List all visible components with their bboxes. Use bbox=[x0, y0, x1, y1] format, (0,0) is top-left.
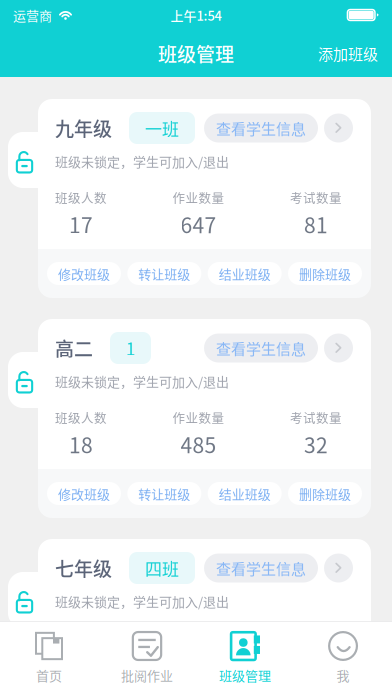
staticText: 查看学生信息 bbox=[216, 117, 306, 139]
staticText: 班级未锁定，学生可加入/退出 bbox=[55, 152, 229, 170]
staticText: 81 bbox=[304, 209, 328, 239]
staticText: 班级未锁定，学生可加入/退出 bbox=[55, 372, 229, 390]
button[interactable]: 添加班级 bbox=[304, 30, 392, 76]
staticText: 考试数量 bbox=[290, 628, 342, 647]
button[interactable]: 转让班级 bbox=[127, 482, 201, 505]
button[interactable]: 修改班级 bbox=[47, 482, 121, 505]
staticText: 一班 bbox=[145, 116, 179, 140]
button[interactable]: 删除班级 bbox=[288, 262, 362, 285]
button[interactable]: 我 bbox=[294, 622, 392, 696]
staticText: 班级未锁定，学生可加入/退出 bbox=[55, 592, 229, 610]
staticText: 转让班级 bbox=[138, 484, 190, 503]
button[interactable]: 查看学生信息 bbox=[204, 553, 353, 582]
staticText: 考试数量 bbox=[290, 188, 342, 207]
staticText: 17 bbox=[69, 209, 93, 239]
staticText: 九年级 bbox=[55, 114, 112, 142]
staticText: 删除班级 bbox=[299, 484, 351, 503]
staticText: 添加班级 bbox=[318, 43, 378, 64]
staticText: 运营商 bbox=[13, 6, 52, 24]
staticText: 485 bbox=[180, 429, 216, 459]
staticText: 转让班级 bbox=[138, 264, 190, 283]
staticText: 结业班级 bbox=[219, 484, 271, 503]
staticText: 班级人数 bbox=[55, 188, 107, 207]
button[interactable]: 结业班级 bbox=[208, 482, 282, 505]
staticText: 考试数量 bbox=[290, 408, 342, 427]
staticText: 七年级 bbox=[55, 554, 112, 582]
button[interactable]: 修改班级 bbox=[47, 262, 121, 285]
button[interactable]: 转让班级 bbox=[127, 262, 201, 285]
staticText: 查看学生信息 bbox=[216, 337, 306, 359]
staticText: 四班 bbox=[145, 556, 179, 580]
staticText: 修改班级 bbox=[58, 264, 110, 283]
staticText: 查看学生信息 bbox=[216, 557, 306, 579]
staticText: 批阅作业 bbox=[121, 666, 173, 684]
staticText: 班级管理 bbox=[219, 666, 271, 684]
button[interactable]: 查看学生信息 bbox=[204, 113, 353, 142]
staticText: 班级人数 bbox=[55, 408, 107, 427]
staticText: 1 bbox=[126, 336, 135, 360]
button[interactable]: 查看学生信息 bbox=[204, 333, 353, 362]
staticText: 高二 bbox=[55, 334, 93, 362]
button[interactable]: 班级管理 bbox=[196, 622, 294, 696]
staticText: 删除班级 bbox=[299, 264, 351, 283]
staticText: 作业数量 bbox=[172, 188, 224, 207]
staticText: 首页 bbox=[36, 666, 62, 684]
staticText: 32 bbox=[304, 429, 328, 459]
staticText: 18 bbox=[69, 429, 93, 459]
staticText: 班级管理 bbox=[158, 40, 234, 67]
button[interactable]: 结业班级 bbox=[208, 262, 282, 285]
staticText: 结业班级 bbox=[219, 264, 271, 283]
button[interactable]: 批阅作业 bbox=[98, 622, 196, 696]
staticText: 班级人数 bbox=[55, 628, 107, 647]
staticText: 作业数量 bbox=[172, 408, 224, 427]
staticText: 修改班级 bbox=[58, 484, 110, 503]
button[interactable]: 首页 bbox=[0, 622, 98, 696]
staticText: 我 bbox=[336, 666, 349, 684]
button[interactable]: 删除班级 bbox=[288, 482, 362, 505]
staticText: 上午1:54 bbox=[170, 6, 221, 24]
staticText: 647 bbox=[180, 209, 216, 239]
